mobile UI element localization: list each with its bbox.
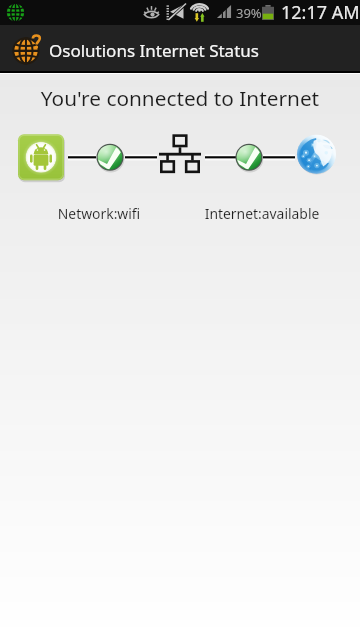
staticText: Internet:available — [178, 204, 346, 223]
staticText: Network:wifi — [0, 204, 198, 223]
staticText: 39% — [236, 4, 262, 22]
staticText: Osolutions Internet Status — [49, 39, 259, 62]
staticText: 12:17 AM — [281, 0, 360, 25]
other: App icon — [13, 34, 40, 63]
staticText: You're connected to Internet — [0, 84, 360, 112]
button[interactable] — [0, 25, 360, 71]
